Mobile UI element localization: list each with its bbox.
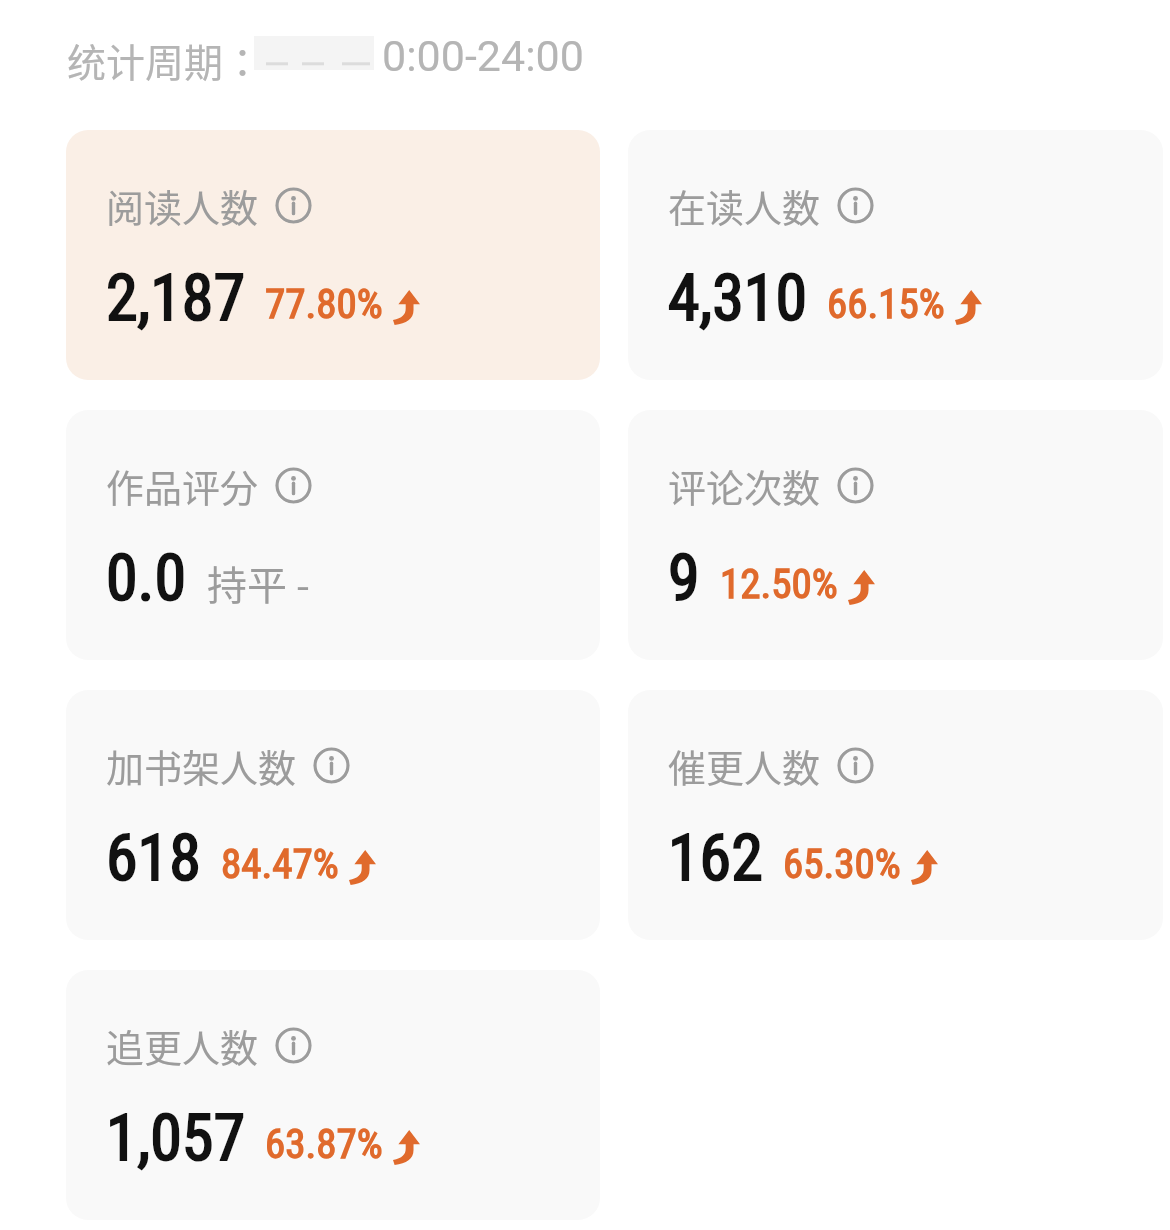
staticText: 催更人数	[668, 738, 821, 793]
staticText: 统计周期：	[67, 32, 263, 88]
staticText: 4,310	[668, 261, 807, 336]
staticText: 162	[668, 821, 763, 896]
button[interactable]: 指标说明	[837, 467, 874, 504]
staticText: 618	[106, 821, 201, 896]
staticText: 1,057	[106, 1101, 245, 1176]
staticText: 在读人数	[668, 178, 821, 233]
button[interactable]: 评论次数	[628, 410, 1163, 660]
staticText: 加书架人数	[106, 738, 297, 793]
button[interactable]: 催更人数	[628, 690, 1163, 940]
staticText: 63.87%	[265, 1120, 383, 1168]
button[interactable]: 加书架人数	[66, 690, 600, 940]
button[interactable]: 阅读人数	[66, 130, 600, 380]
staticText: 0.0	[106, 541, 187, 616]
button[interactable]: 指标说明	[275, 187, 312, 224]
staticText: 0:00-24:00	[382, 31, 584, 81]
button[interactable]: 指标说明	[275, 1027, 312, 1064]
staticText: 2,187	[106, 261, 245, 336]
button[interactable]: 指标说明	[837, 747, 874, 784]
staticText: 持平 -	[207, 554, 310, 612]
button[interactable]: 指标说明	[837, 187, 874, 224]
button[interactable]: 在读人数	[628, 130, 1163, 380]
button[interactable]: 指标说明	[275, 467, 312, 504]
staticText: 84.47%	[221, 840, 339, 888]
button[interactable]: 作品评分	[66, 410, 600, 660]
staticText: 阅读人数	[106, 178, 259, 233]
staticText: 追更人数	[106, 1018, 259, 1073]
staticText: 65.30%	[783, 840, 901, 888]
staticText: 作品评分	[106, 458, 259, 513]
button[interactable]: 指标说明	[313, 747, 350, 784]
button[interactable]: 追更人数	[66, 970, 600, 1220]
staticText: 12.50%	[720, 560, 838, 608]
staticText: 77.80%	[265, 280, 383, 328]
staticText: 66.15%	[827, 280, 945, 328]
staticText: 9	[668, 541, 700, 616]
staticText: 评论次数	[668, 458, 821, 513]
